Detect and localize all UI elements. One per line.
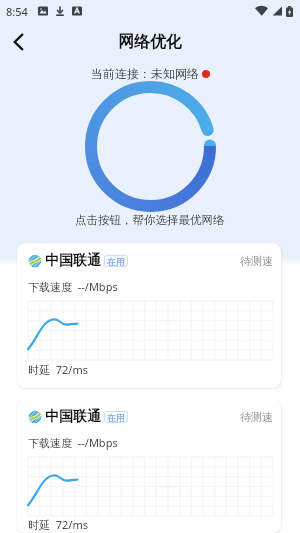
staticText: 中国联通 <box>45 252 101 270</box>
staticText: 8:54 <box>6 4 28 19</box>
staticText: 待测速 <box>240 410 273 424</box>
staticText: 时延 72/ms <box>28 517 88 532</box>
button[interactable]: Back <box>3 27 33 57</box>
staticText: 在用 <box>107 256 125 267</box>
staticText: 点击按钮，帮你选择最优网络 <box>75 213 225 227</box>
button[interactable]: Start network test <box>85 81 216 212</box>
button[interactable]: 中国联通 <box>17 243 281 388</box>
staticText: 当前连接：未知网络 <box>91 66 199 81</box>
staticText: 时延 72/ms <box>28 362 88 377</box>
button[interactable]: 中国联通 <box>17 399 281 533</box>
staticText: 下载速度 --/Mbps <box>28 279 118 294</box>
staticText: 待测速 <box>240 254 273 268</box>
staticText: 下载速度 --/Mbps <box>28 435 118 450</box>
staticText: 在用 <box>107 412 125 423</box>
staticText: 网络优化 <box>118 32 182 52</box>
staticText: 中国联通 <box>45 408 101 426</box>
